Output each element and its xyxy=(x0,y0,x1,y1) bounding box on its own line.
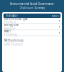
staticText: Environmental Social Governance xyxy=(10,2,54,6)
staticText: Status xyxy=(51,14,58,17)
staticText: Water xyxy=(4,29,11,33)
staticText: Indicator xyxy=(5,14,17,17)
staticText: Disclosure Summary xyxy=(19,6,44,10)
staticText: Greenhouse gas xyxy=(4,17,27,21)
staticText: Verified xyxy=(4,21,16,24)
staticText: Energy use xyxy=(4,23,19,27)
staticText: GHG Protocol xyxy=(4,43,23,46)
button[interactable]: Water xyxy=(2,30,62,36)
staticText: Pending xyxy=(4,33,17,36)
staticText: Methodology xyxy=(4,39,23,42)
staticText: Assured xyxy=(4,27,15,30)
button[interactable]: Greenhouse gas xyxy=(2,18,62,24)
button[interactable]: Energy use xyxy=(2,24,62,30)
